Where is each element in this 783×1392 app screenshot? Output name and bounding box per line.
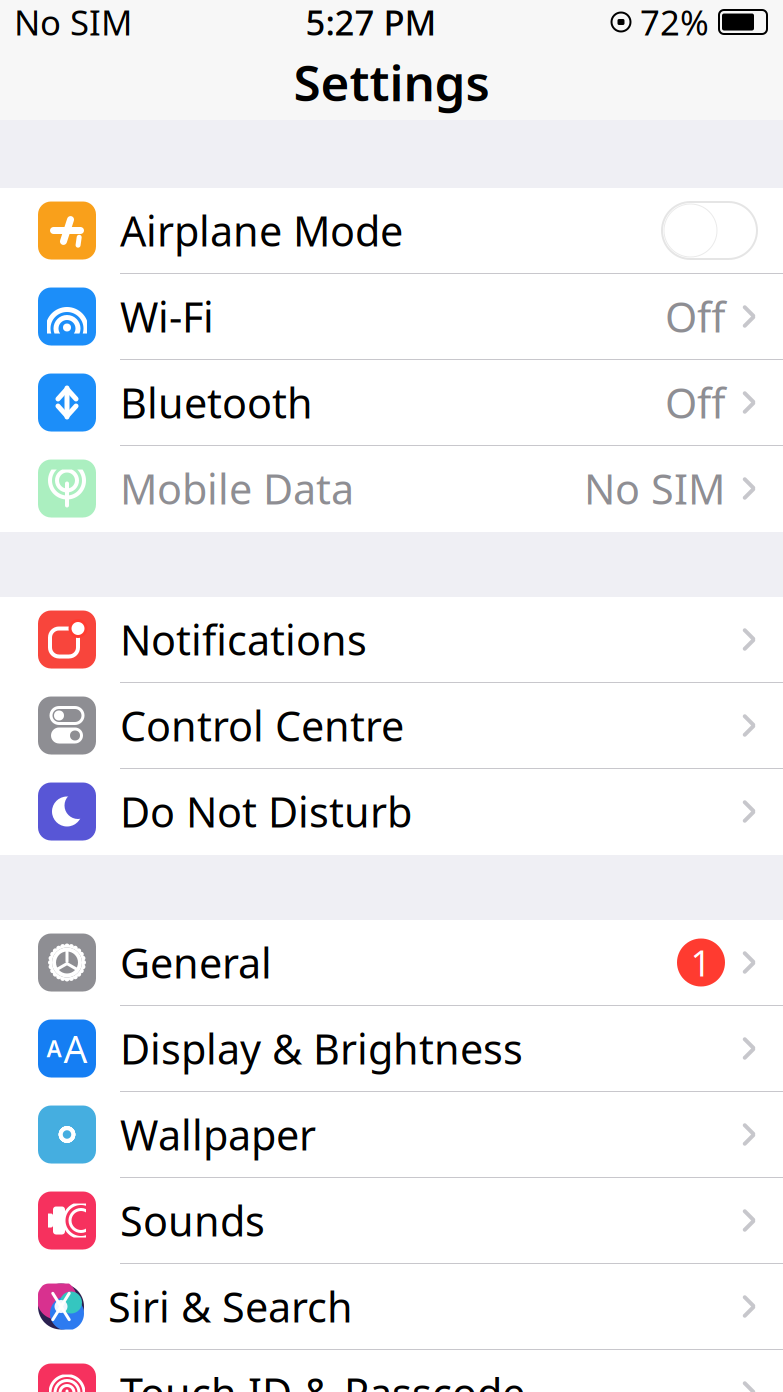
- staticText: Do Not Disturb: [120, 784, 412, 839]
- staticText: A: [46, 1033, 61, 1063]
- staticText: Sounds: [120, 1193, 265, 1248]
- button[interactable]: Control Centre: [0, 683, 783, 769]
- staticText: Wallpaper: [120, 1107, 316, 1162]
- button[interactable]: Mobile Data: [0, 446, 783, 532]
- staticText: 5:27 PM: [305, 0, 436, 45]
- staticText: Off: [665, 375, 725, 430]
- staticText: Bluetooth: [120, 375, 313, 430]
- staticText: Notifications: [120, 612, 367, 667]
- staticText: Off: [665, 289, 725, 344]
- staticText: Siri & Search: [108, 1279, 353, 1334]
- button[interactable]: Do Not Disturb: [0, 769, 783, 855]
- staticText: 72%: [640, 0, 709, 45]
- button[interactable]: A: [0, 1006, 783, 1092]
- button[interactable]: Siri & Search: [0, 1264, 783, 1350]
- staticText: Mobile Data: [120, 461, 354, 516]
- staticText: Airplane Mode: [120, 203, 403, 258]
- button[interactable]: Touch ID & Passcode: [0, 1350, 783, 1392]
- staticText: Touch ID & Passcode: [120, 1365, 525, 1392]
- button[interactable]: Bluetooth: [0, 360, 783, 446]
- staticText: A: [63, 1024, 87, 1073]
- staticText: No SIM: [584, 461, 725, 516]
- staticText: General: [120, 935, 272, 990]
- staticText: Wi-Fi: [120, 289, 214, 344]
- button[interactable]: Wallpaper: [0, 1092, 783, 1178]
- button[interactable]: General: [0, 920, 783, 1006]
- staticText: Control Centre: [120, 698, 404, 753]
- staticText: Display & Brightness: [120, 1021, 523, 1076]
- button[interactable]: Sounds: [0, 1178, 783, 1264]
- staticText: No SIM: [14, 0, 132, 45]
- button[interactable]: Wi-Fi: [0, 274, 783, 360]
- staticText: 1: [690, 939, 711, 986]
- staticText: Settings: [293, 49, 489, 115]
- button[interactable]: Airplane Mode: [0, 188, 783, 274]
- button[interactable]: Notifications: [0, 597, 783, 683]
